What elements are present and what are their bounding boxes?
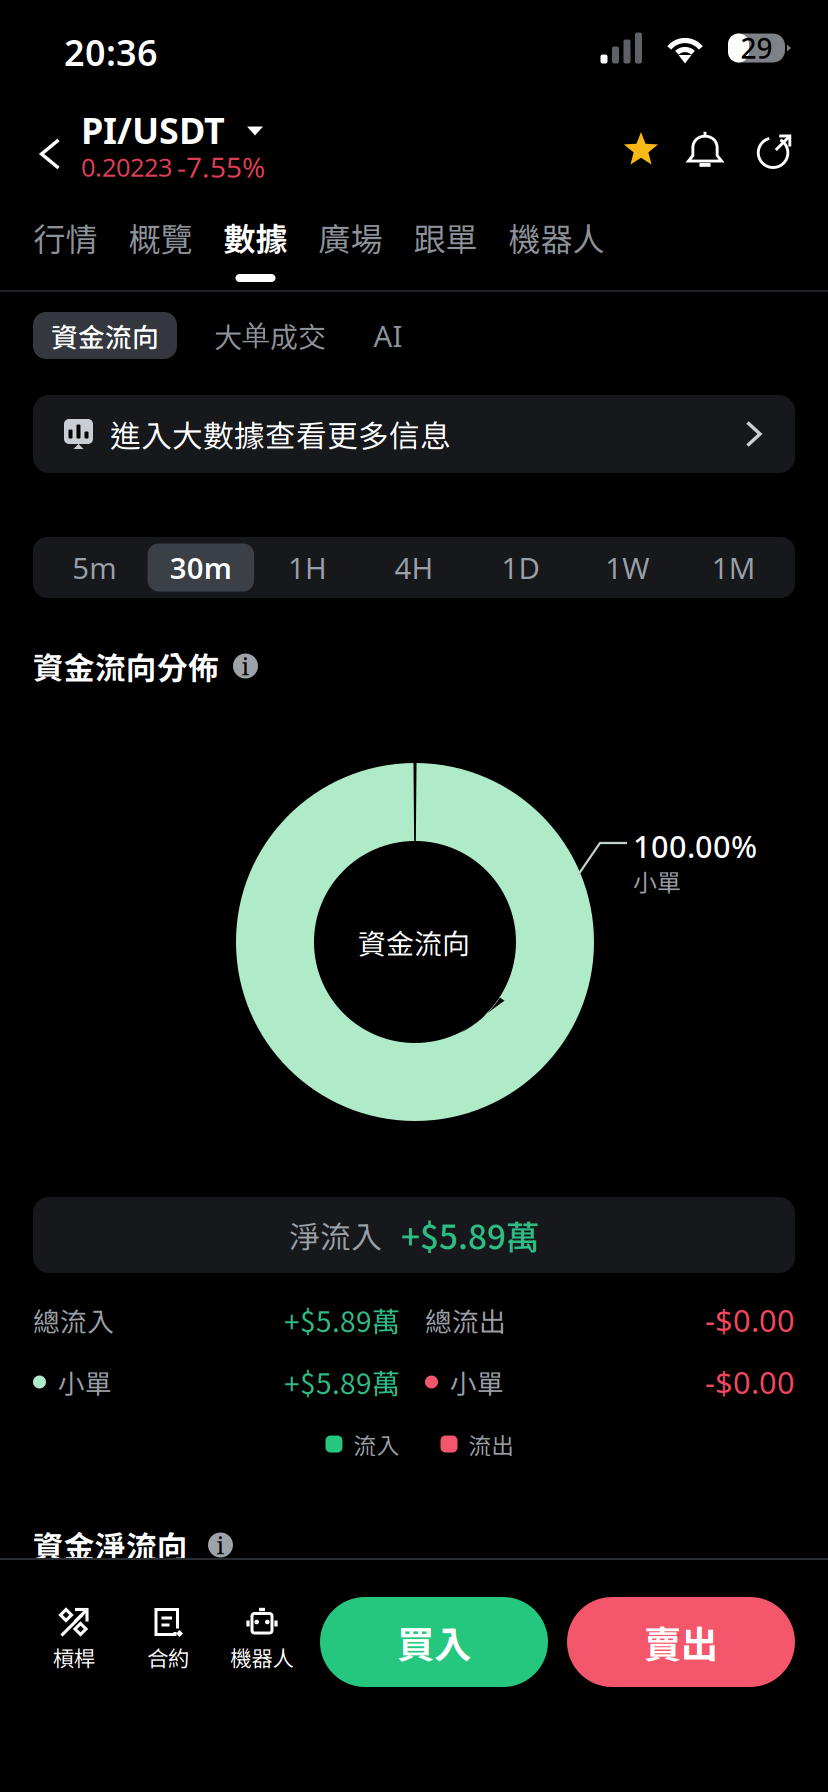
staticText: 資金流向 xyxy=(358,922,470,962)
staticText: 跟單 xyxy=(413,214,477,260)
staticText: 買入 xyxy=(397,1615,471,1669)
staticText: 合約 xyxy=(147,1642,189,1672)
staticText: 1W xyxy=(605,548,649,587)
staticText: 機器人 xyxy=(230,1642,293,1672)
button[interactable]: Share xyxy=(747,114,803,178)
staticText: 30m xyxy=(170,548,232,587)
button[interactable]: 1M xyxy=(680,543,787,591)
button[interactable]: Price alert xyxy=(677,114,733,178)
button[interactable]: 跟單 xyxy=(398,214,493,282)
button[interactable]: 5m xyxy=(41,543,148,591)
button[interactable]: 機器人 xyxy=(493,214,620,282)
button[interactable]: 1D xyxy=(467,543,574,591)
staticText: 行情 xyxy=(33,214,97,260)
staticText: 5m xyxy=(72,548,116,587)
button[interactable]: 30m xyxy=(148,543,254,591)
button[interactable]: 行情 xyxy=(18,214,113,282)
staticText: -7.55% xyxy=(177,148,265,186)
staticText: 資金流向分佈 xyxy=(33,644,219,688)
staticText: 20:36 xyxy=(64,28,158,76)
staticText: 小單 xyxy=(58,1363,112,1401)
staticText: 4H xyxy=(394,548,433,587)
button[interactable]: 廣場 xyxy=(303,214,398,282)
staticText: 廣場 xyxy=(318,214,382,260)
staticText: +$5.89萬 xyxy=(284,1362,400,1402)
staticText: 概覽 xyxy=(128,214,192,260)
staticText: i xyxy=(241,650,249,682)
staticText: 槓桿 xyxy=(53,1642,95,1672)
staticText: 進入大數據查看更多信息 xyxy=(110,412,451,456)
button[interactable]: 數據 xyxy=(208,214,303,282)
button[interactable]: 概覽 xyxy=(113,214,208,282)
button[interactable]: 資金流向 xyxy=(33,312,177,359)
staticText: 淨流入 xyxy=(289,1213,382,1257)
staticText: 0.20223 xyxy=(81,150,172,184)
button[interactable]: AI xyxy=(357,312,419,359)
staticText: 小單 xyxy=(633,864,681,898)
button[interactable]: 機器人 xyxy=(215,1604,309,1679)
button[interactable]: Back xyxy=(19,98,81,194)
staticText: 機器人 xyxy=(508,214,604,260)
button[interactable]: 買入 xyxy=(320,1597,548,1687)
button[interactable]: 槓桿 xyxy=(27,1604,121,1679)
button[interactable]: 1W xyxy=(574,543,680,591)
staticText: 數據 xyxy=(223,214,287,260)
button[interactable]: Favorite xyxy=(613,114,669,178)
staticText: 流入 xyxy=(353,1428,399,1460)
button[interactable]: 大单成交 xyxy=(205,312,335,359)
staticText: +$5.89萬 xyxy=(284,1300,400,1340)
staticText: 資金淨流向 xyxy=(33,1523,188,1567)
staticText: 100.00% xyxy=(633,826,757,866)
staticText: 1H xyxy=(288,548,327,587)
staticText: +$5.89萬 xyxy=(401,1211,539,1259)
staticText: 總流入 xyxy=(33,1301,114,1339)
button[interactable]: 4H xyxy=(361,543,467,591)
button[interactable]: 賣出 xyxy=(567,1597,795,1687)
button[interactable]: 1H xyxy=(254,543,361,591)
staticText: 流出 xyxy=(468,1428,514,1460)
staticText: AI xyxy=(373,316,402,355)
staticText: 大单成交 xyxy=(214,315,326,356)
staticText: 總流出 xyxy=(425,1301,506,1339)
staticText: PI/USDT xyxy=(81,106,225,154)
button[interactable]: 合約 xyxy=(121,1604,215,1679)
button[interactable]: 進入大數據查看更多信息 xyxy=(33,395,795,473)
staticText: -$0.00 xyxy=(705,1362,795,1402)
staticText: 1D xyxy=(502,548,540,587)
staticText: 1M xyxy=(712,548,756,587)
staticText: 小單 xyxy=(450,1363,504,1401)
staticText: 賣出 xyxy=(644,1615,718,1669)
staticText: 資金流向 xyxy=(51,316,159,355)
staticText: i xyxy=(216,1529,224,1561)
staticText: -$0.00 xyxy=(705,1300,795,1340)
staticText: 29 xyxy=(740,29,772,67)
